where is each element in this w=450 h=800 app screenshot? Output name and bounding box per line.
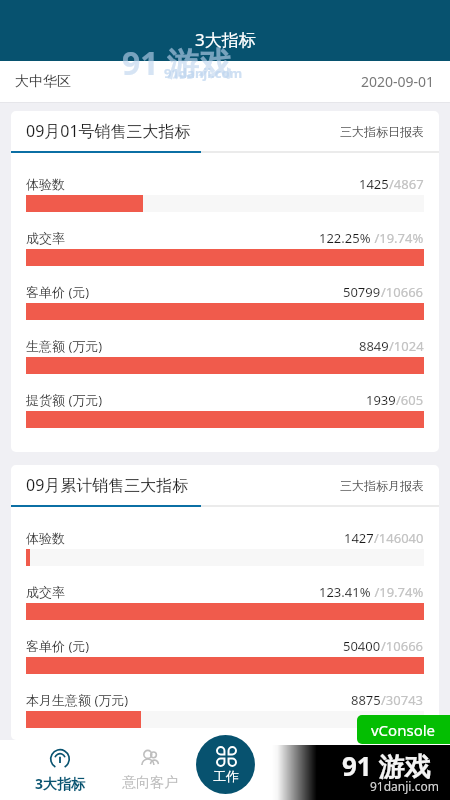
staticText: /146040 xyxy=(374,529,424,547)
button[interactable]: 我的 xyxy=(345,740,435,800)
staticText: /19.74% xyxy=(371,229,424,247)
staticText: 1939 xyxy=(366,391,396,409)
staticText: 客单价 (元) xyxy=(26,637,90,655)
staticText: 2020-09-01 xyxy=(361,72,435,91)
staticText: 成交率 xyxy=(26,230,65,246)
staticText: 意向客户 xyxy=(122,774,178,792)
staticText: 09月01号销售三大指标 xyxy=(26,120,191,142)
staticText: /605 xyxy=(396,391,424,409)
button[interactable]: vConsole xyxy=(357,715,450,744)
staticText: 1425 xyxy=(359,175,389,193)
staticText: 8849 xyxy=(359,337,389,355)
staticText: 50799 xyxy=(343,283,381,301)
staticText: 促销管理 xyxy=(272,775,328,793)
staticText: 91danji.com xyxy=(370,778,439,794)
staticText: 91 游戏 xyxy=(122,41,231,85)
staticText: 我的 xyxy=(376,774,404,792)
staticText: 1427 xyxy=(344,529,374,547)
staticText: 91 游戏 xyxy=(342,748,431,784)
staticText: 提货额 (万元) xyxy=(26,391,103,409)
staticText: 体验数 xyxy=(26,176,65,192)
staticText: 客单价 (元) xyxy=(26,283,90,301)
staticText: 3大指标 xyxy=(195,28,256,51)
staticText: 50400 xyxy=(343,637,381,655)
button[interactable]: 三大指标月报表 xyxy=(340,478,424,493)
staticText: 大中华区 xyxy=(15,73,71,91)
button[interactable]: 意向客户 xyxy=(105,740,195,800)
staticText: /4867 xyxy=(389,175,424,193)
button[interactable]: 促销管理 xyxy=(255,740,345,800)
staticText: 3大指标 xyxy=(35,774,86,793)
staticText: /1024 xyxy=(389,337,424,355)
staticText: 工作 xyxy=(213,768,239,784)
staticText: 体验数 xyxy=(26,530,65,546)
staticText: 本月生意额 (万元) xyxy=(26,691,129,709)
button[interactable]: 工作 xyxy=(196,735,255,794)
staticText: 生意额 (万元) xyxy=(26,337,103,355)
staticText: 122.25% xyxy=(319,229,371,247)
staticText: /10666 xyxy=(381,637,424,655)
button[interactable]: 3大指标 xyxy=(15,740,105,800)
staticText: /19.74% xyxy=(371,583,424,601)
staticText: 8875 xyxy=(351,691,381,709)
staticText: 123.41% xyxy=(319,583,371,601)
staticText: vConsole xyxy=(371,720,436,740)
button[interactable]: 三大指标日报表 xyxy=(340,124,424,139)
staticText: 09月累计销售三大指标 xyxy=(26,474,189,496)
staticText: /10666 xyxy=(381,283,424,301)
staticText: /30743 xyxy=(381,691,424,709)
staticText: 成交率 xyxy=(26,584,65,600)
staticText: 91danji.com xyxy=(164,64,243,82)
